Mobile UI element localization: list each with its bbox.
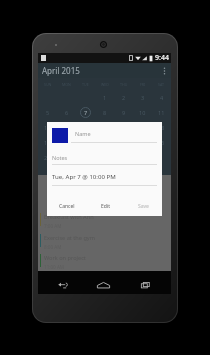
staticText: Notes	[52, 154, 68, 161]
staticText: 9:44	[155, 53, 169, 63]
button[interactable]: Back	[54, 276, 71, 293]
staticText: 10	[139, 109, 146, 116]
button[interactable]: Work on project	[38, 254, 171, 273]
staticText: 20	[63, 139, 70, 146]
staticText: 5	[46, 109, 50, 116]
staticText: 12	[44, 124, 51, 131]
staticText: 24	[139, 139, 146, 146]
staticText: 27	[63, 154, 70, 161]
staticText: 9	[122, 109, 126, 116]
button[interactable]: More options	[158, 63, 171, 78]
staticText: 7	[84, 109, 88, 116]
staticText: Exercise at the gym	[44, 234, 95, 242]
staticText: Tue, Apr 7 @ 10:00 PM	[52, 172, 116, 180]
button[interactable]: 10	[133, 105, 152, 120]
staticText: 4	[160, 94, 164, 101]
button[interactable]: 24	[133, 135, 152, 150]
staticText: SAT	[158, 82, 165, 87]
staticText: 22	[101, 139, 108, 146]
staticText: Name	[75, 130, 91, 137]
button[interactable]: 19	[38, 135, 57, 150]
staticText: 13	[63, 124, 70, 131]
staticText: April 2015	[42, 65, 80, 76]
button[interactable]: 25	[152, 135, 171, 150]
staticText: 18	[158, 124, 165, 131]
button[interactable]: 20	[57, 135, 76, 150]
staticText: TUE	[82, 82, 89, 87]
button[interactable]: Home	[95, 276, 112, 293]
staticText: Work on project	[44, 254, 86, 262]
staticText: 6	[65, 109, 69, 116]
button[interactable]: 23	[114, 135, 133, 150]
button[interactable]: Recents	[137, 276, 154, 293]
button[interactable]: 21	[76, 135, 95, 150]
button[interactable]: 12	[38, 120, 57, 135]
button[interactable]: 17	[133, 120, 152, 135]
button[interactable]: 13	[57, 120, 76, 135]
button[interactable]: Cancel	[47, 198, 86, 214]
button[interactable]	[152, 150, 171, 165]
staticText: 21	[82, 139, 89, 146]
button[interactable]: 14	[76, 120, 95, 135]
staticText: 2	[122, 94, 126, 101]
staticText: Save	[138, 203, 149, 210]
staticText: WED	[101, 82, 109, 87]
button[interactable]: 30	[114, 150, 133, 165]
staticText: SUN	[44, 82, 52, 87]
button[interactable]: 26	[38, 150, 57, 165]
staticText: 19	[44, 139, 51, 146]
button[interactable]: 7	[76, 105, 95, 120]
button[interactable]: 29	[95, 150, 114, 165]
button[interactable]: 22	[95, 135, 114, 150]
button[interactable]: Exercise at the gym	[38, 234, 171, 253]
staticText: Breakfast with Ann	[44, 213, 94, 221]
staticText: Cancel	[59, 203, 75, 210]
staticText: 1	[103, 94, 107, 101]
staticText: 25	[158, 139, 165, 146]
button[interactable]: Breakfast with Ann	[38, 213, 171, 232]
button[interactable]: 15	[95, 120, 114, 135]
button[interactable]: 28	[76, 150, 95, 165]
staticText: 26	[44, 154, 51, 161]
staticText: 11	[158, 109, 165, 116]
staticText: THU	[120, 82, 128, 87]
button[interactable]	[133, 150, 152, 165]
button[interactable]: Edit	[86, 198, 124, 214]
staticText: 23	[120, 139, 127, 146]
button[interactable]: 18	[152, 120, 171, 135]
staticText: 3	[141, 94, 145, 101]
button[interactable]: 16	[114, 120, 133, 135]
button[interactable]: Save	[124, 198, 162, 214]
staticText: MON	[62, 82, 71, 87]
staticText: 8	[103, 109, 107, 116]
button[interactable]: 27	[57, 150, 76, 165]
staticText: Edit	[101, 203, 110, 210]
staticText: FRI	[140, 82, 146, 87]
